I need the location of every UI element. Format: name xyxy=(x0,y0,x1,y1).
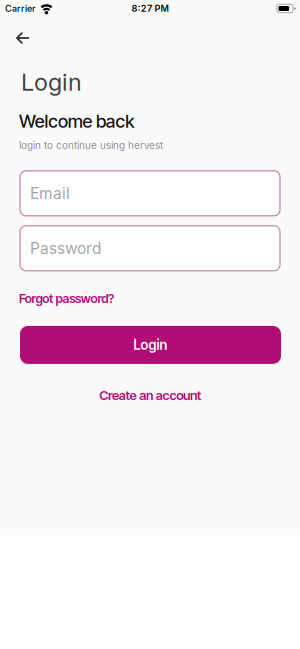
button[interactable]: Back xyxy=(0,17,37,46)
staticText: Create an account xyxy=(99,387,201,403)
staticText: Login xyxy=(21,68,82,96)
button[interactable]: Password xyxy=(20,226,280,271)
staticText: login to continue using hervest xyxy=(19,139,163,151)
button[interactable]: Email xyxy=(20,171,280,216)
button[interactable]: Forgot password? xyxy=(19,291,114,306)
staticText: Forgot password? xyxy=(19,291,114,306)
button[interactable]: Create an account xyxy=(0,387,300,403)
staticText: Welcome back xyxy=(19,110,134,132)
staticText: Carrier xyxy=(5,3,35,14)
staticText: Password xyxy=(30,239,101,258)
staticText: Login xyxy=(133,337,167,353)
staticText: Email xyxy=(30,184,70,203)
staticText: 8:27 PM xyxy=(131,3,169,14)
button[interactable]: Login xyxy=(20,326,281,364)
